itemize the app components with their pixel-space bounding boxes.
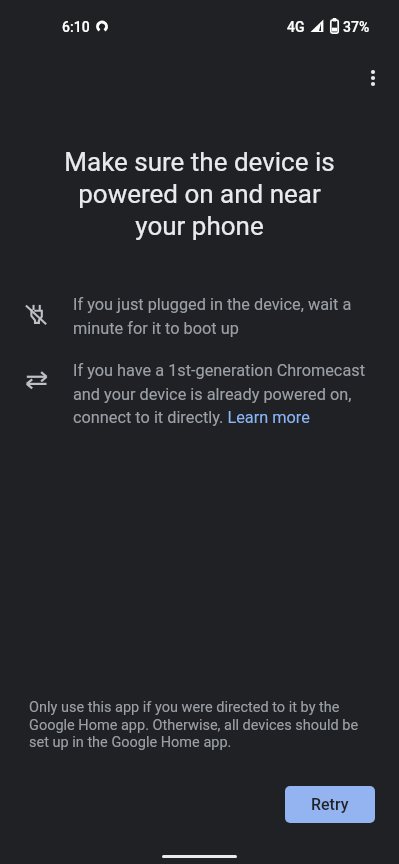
staticText: 6:10: [62, 19, 90, 35]
staticText: If you just plugged in the device, wait …: [73, 295, 352, 338]
staticText: 37%: [343, 19, 370, 35]
staticText: If you have a 1st-generation Chromecast …: [73, 361, 366, 427]
button[interactable]: Learn more: [226, 409, 311, 426]
staticText: Only use this app if you were directed t…: [29, 699, 369, 750]
staticText: 4G: [287, 19, 305, 35]
staticText: Retry: [311, 795, 349, 814]
button[interactable]: Retry: [285, 786, 375, 823]
staticText: Make sure the device is powered on and n…: [54, 147, 345, 241]
button[interactable]: More options: [351, 56, 395, 100]
